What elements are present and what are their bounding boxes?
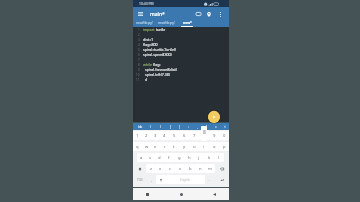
staticText: 4 [138, 43, 140, 47]
button[interactable]: 1 [133, 131, 142, 140]
button[interactable]: Location [205, 10, 213, 18]
staticText: e [154, 144, 157, 150]
button[interactable]: tab [135, 123, 145, 130]
button[interactable]: t [169, 142, 179, 151]
staticText: 7 [138, 58, 140, 62]
button[interactable]: newfile.py1 [158, 18, 175, 27]
button[interactable]: 6 [179, 131, 189, 140]
button[interactable]: [ [165, 123, 175, 130]
staticText: z [150, 166, 152, 172]
button[interactable]: Run [207, 110, 221, 124]
button[interactable]: Back [210, 190, 219, 199]
staticText: . [209, 177, 211, 182]
button[interactable]: b [185, 164, 195, 173]
button[interactable]: Voice input [156, 175, 166, 184]
button[interactable]: q [133, 142, 142, 151]
staticText: k [208, 155, 211, 161]
staticText: 6 [138, 53, 140, 57]
button[interactable]: , [147, 174, 156, 185]
button[interactable]: v [175, 164, 185, 173]
staticText: = [215, 125, 217, 129]
staticText: n [199, 166, 202, 172]
button[interactable]: g [174, 153, 184, 162]
staticText: f [168, 155, 170, 161]
staticText: 3 [154, 133, 157, 139]
button[interactable]: " [202, 123, 211, 130]
staticText: u [193, 144, 196, 150]
button[interactable]: 8 [199, 131, 209, 140]
staticText: dist=1 [143, 37, 154, 42]
button[interactable]: , [193, 123, 202, 130]
button[interactable]: k [204, 153, 214, 162]
staticText: 0 [223, 133, 226, 139]
button[interactable]: ) [155, 123, 165, 130]
button[interactable]: 7 [189, 131, 199, 140]
button[interactable]: p [219, 142, 229, 151]
button[interactable]: h [184, 153, 194, 162]
button[interactable]: new* [181, 18, 193, 27]
button[interactable]: 3 [151, 131, 160, 140]
staticText: tab [138, 125, 143, 129]
button[interactable]: z [146, 164, 155, 173]
button[interactable]: Backspace [215, 163, 229, 174]
staticText: g [178, 155, 181, 161]
button[interactable]: i [199, 142, 209, 151]
button[interactable]: s [146, 153, 155, 162]
button[interactable]: Home [177, 190, 186, 199]
button[interactable]: a [137, 153, 146, 162]
button[interactable]: c [165, 164, 175, 173]
button[interactable]: More options [216, 10, 224, 18]
button[interactable]: : [184, 123, 193, 130]
staticText: s [149, 155, 152, 161]
button[interactable]: newfile.py1 [136, 18, 153, 27]
button[interactable]: Shift [133, 163, 146, 174]
staticText: flag: [153, 62, 161, 67]
staticText: new* [183, 20, 192, 25]
staticText: q [136, 144, 139, 150]
button[interactable]: y [179, 142, 189, 151]
button[interactable]: = [211, 123, 220, 130]
button[interactable]: 0 [219, 131, 229, 140]
button[interactable]: ] [175, 123, 184, 130]
button[interactable]: ( [145, 123, 155, 130]
staticText: , [197, 125, 198, 129]
staticText: import [143, 27, 156, 32]
button[interactable]: w [142, 142, 151, 151]
button[interactable]: English [166, 175, 205, 184]
button[interactable]: j [194, 153, 204, 162]
staticText: , [151, 177, 153, 182]
button[interactable]: Enter [214, 174, 229, 185]
button[interactable]: l [214, 153, 224, 162]
staticText: main* [150, 11, 165, 18]
button[interactable]: Recents [143, 190, 152, 199]
staticText: 11 [136, 78, 140, 82]
staticText: 10 [136, 73, 140, 77]
button[interactable]: n [195, 164, 205, 173]
button[interactable]: 2 [142, 131, 151, 140]
button[interactable]: e [151, 142, 160, 151]
staticText: ?123 [137, 178, 143, 182]
button[interactable]: x [155, 164, 165, 173]
button[interactable]: 5 [169, 131, 179, 140]
button[interactable]: Files [194, 10, 202, 18]
button[interactable]: o [209, 142, 219, 151]
button[interactable]: m [205, 164, 215, 173]
staticText: spiral=turtle.Turtle() [143, 47, 177, 52]
staticText: 10:43 PM [139, 1, 154, 6]
button[interactable]: ?123 [133, 174, 147, 185]
button[interactable]: f [164, 153, 174, 162]
button[interactable]: 9 [209, 131, 219, 140]
staticText: ) [160, 125, 161, 129]
button[interactable]: u [189, 142, 199, 151]
button[interactable]: r [160, 142, 169, 151]
staticText: English [180, 178, 191, 182]
staticText: y [183, 144, 186, 150]
button[interactable]: Navigation menu [136, 10, 144, 18]
button[interactable]: < [220, 123, 229, 130]
staticText: [ [170, 125, 171, 129]
staticText: b [189, 166, 192, 172]
staticText: 4 [163, 133, 166, 139]
button[interactable]: 4 [160, 131, 169, 140]
button[interactable]: d [155, 153, 164, 162]
